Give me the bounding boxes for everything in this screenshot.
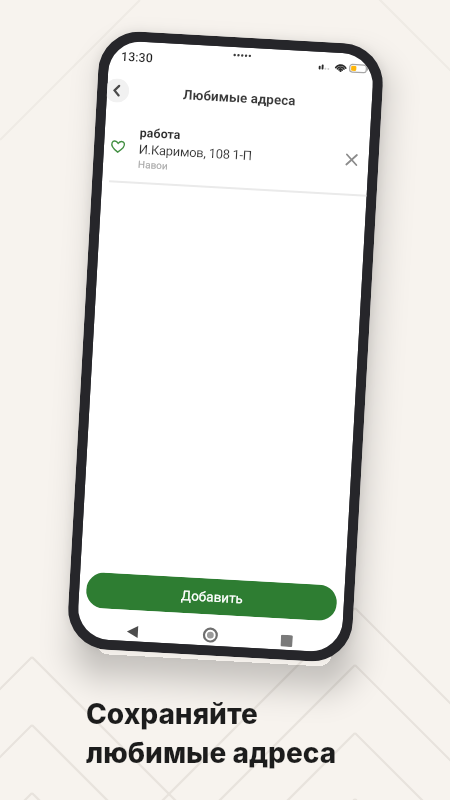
- staticText: Добавить: [181, 587, 243, 606]
- staticText: 13:30: [121, 49, 153, 65]
- button[interactable]: работа: [109, 123, 360, 183]
- staticText: работа: [139, 125, 181, 142]
- button[interactable]: [126, 625, 139, 639]
- button[interactable]: [344, 152, 359, 167]
- staticText: Сохраняйте: [86, 697, 258, 731]
- staticText: Навои: [138, 159, 168, 172]
- button[interactable]: [280, 634, 293, 647]
- button[interactable]: [202, 627, 218, 643]
- staticText: любимые адреса: [86, 736, 337, 770]
- staticText: И.Каримов, 108 1-П: [138, 142, 253, 163]
- staticText: Любимые адреса: [183, 86, 296, 108]
- button[interactable]: Добавить: [85, 572, 338, 622]
- button[interactable]: [106, 78, 130, 103]
